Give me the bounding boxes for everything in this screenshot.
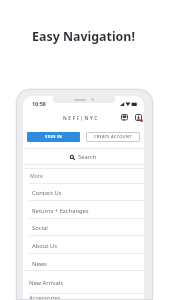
staticText: 10:58: [32, 100, 46, 107]
staticText: Accessories: [29, 294, 61, 300]
staticText: CREATE ACCOUNT: [94, 134, 132, 140]
staticText: More: [30, 172, 43, 179]
button[interactable]: News: [23, 254, 144, 271]
button[interactable]: CREATE ACCOUNT: [86, 132, 140, 142]
staticText: Search: [78, 153, 97, 161]
staticText: New Arrivals: [29, 279, 64, 287]
staticText: Social: [32, 224, 48, 232]
button[interactable]: Contact Us: [23, 183, 144, 200]
button[interactable]: SIGN IN: [27, 132, 80, 142]
staticText: Easy Navigation!: [0, 28, 168, 45]
button[interactable]: About Us: [23, 236, 144, 253]
staticText: Contact Us: [32, 189, 62, 197]
button[interactable]: Returns + Exchanges: [23, 201, 144, 218]
staticText: About Us: [32, 242, 57, 250]
staticText: N E F I | N Y C: [63, 115, 98, 121]
staticText: News: [32, 260, 47, 268]
staticText: SIGN IN: [45, 134, 62, 140]
button[interactable]: Shopping bag: [135, 114, 142, 121]
staticText: Returns + Exchanges: [32, 207, 89, 215]
button[interactable]: Messages: [121, 114, 128, 121]
button[interactable]: New Arrivals: [23, 271, 144, 293]
button[interactable]: Social: [23, 218, 144, 235]
button[interactable]: Search: [23, 149, 144, 164]
button[interactable]: Accessories: [23, 294, 144, 300]
